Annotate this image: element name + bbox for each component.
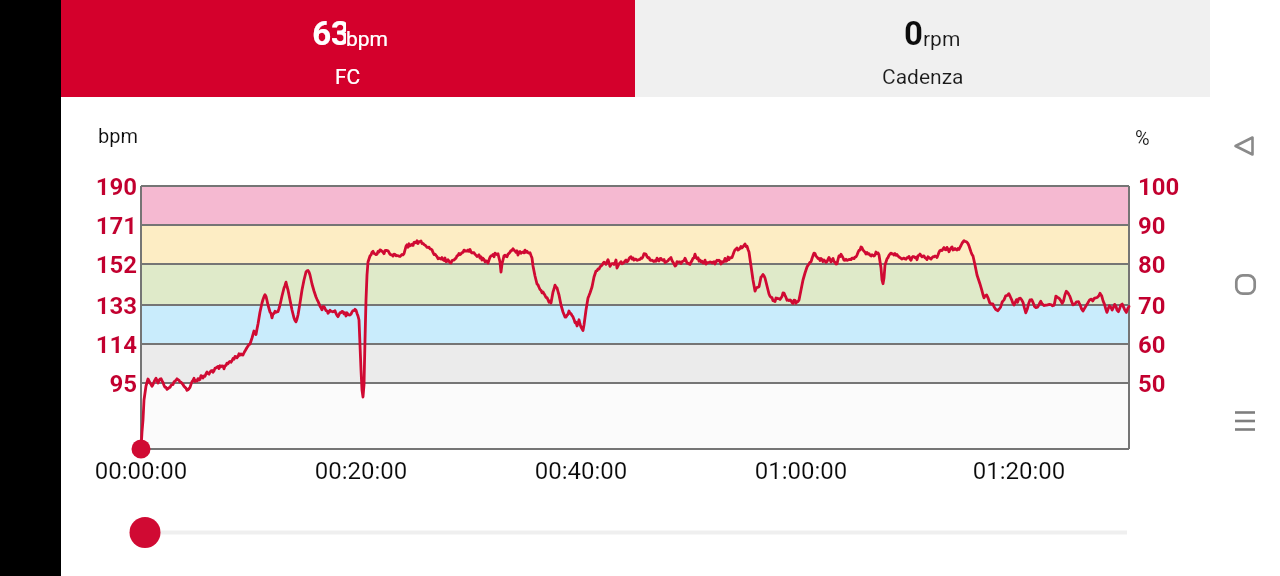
- button[interactable]: 63: [61, 0, 635, 97]
- staticText: %: [1135, 126, 1150, 149]
- staticText: 0: [889, 14, 923, 53]
- staticText: 50: [1138, 370, 1166, 398]
- button[interactable]: Back: [1214, 116, 1274, 176]
- staticText: 100: [1138, 173, 1180, 201]
- staticText: 63: [312, 14, 346, 53]
- staticText: Cadenza: [882, 65, 964, 90]
- staticText: 01:20:00: [949, 457, 1089, 485]
- staticText: FC: [335, 65, 361, 90]
- button[interactable]: Heart rate chart: [61, 97, 1210, 576]
- staticText: 60: [1138, 331, 1166, 359]
- staticText: 133: [81, 292, 137, 320]
- staticText: 00:20:00: [291, 457, 431, 485]
- button[interactable]: Scrub timeline: [81, 510, 1230, 554]
- staticText: 00:40:00: [511, 457, 651, 485]
- button[interactable]: Home: [1215, 254, 1275, 314]
- button[interactable]: 0: [635, 0, 1210, 97]
- button[interactable]: Recent apps: [1215, 391, 1275, 451]
- staticText: 95: [81, 370, 137, 398]
- staticText: 70: [1138, 292, 1166, 320]
- staticText: 00:00:00: [71, 457, 211, 485]
- staticText: 01:00:00: [731, 457, 871, 485]
- staticText: 114: [81, 331, 137, 359]
- staticText: 171: [81, 212, 137, 240]
- staticText: 80: [1138, 251, 1166, 279]
- staticText: 152: [81, 251, 137, 279]
- staticText: bpm: [98, 124, 138, 147]
- staticText: 190: [81, 173, 137, 201]
- staticText: rpm: [923, 27, 961, 52]
- staticText: 90: [1138, 212, 1166, 240]
- staticText: bpm: [346, 27, 388, 52]
